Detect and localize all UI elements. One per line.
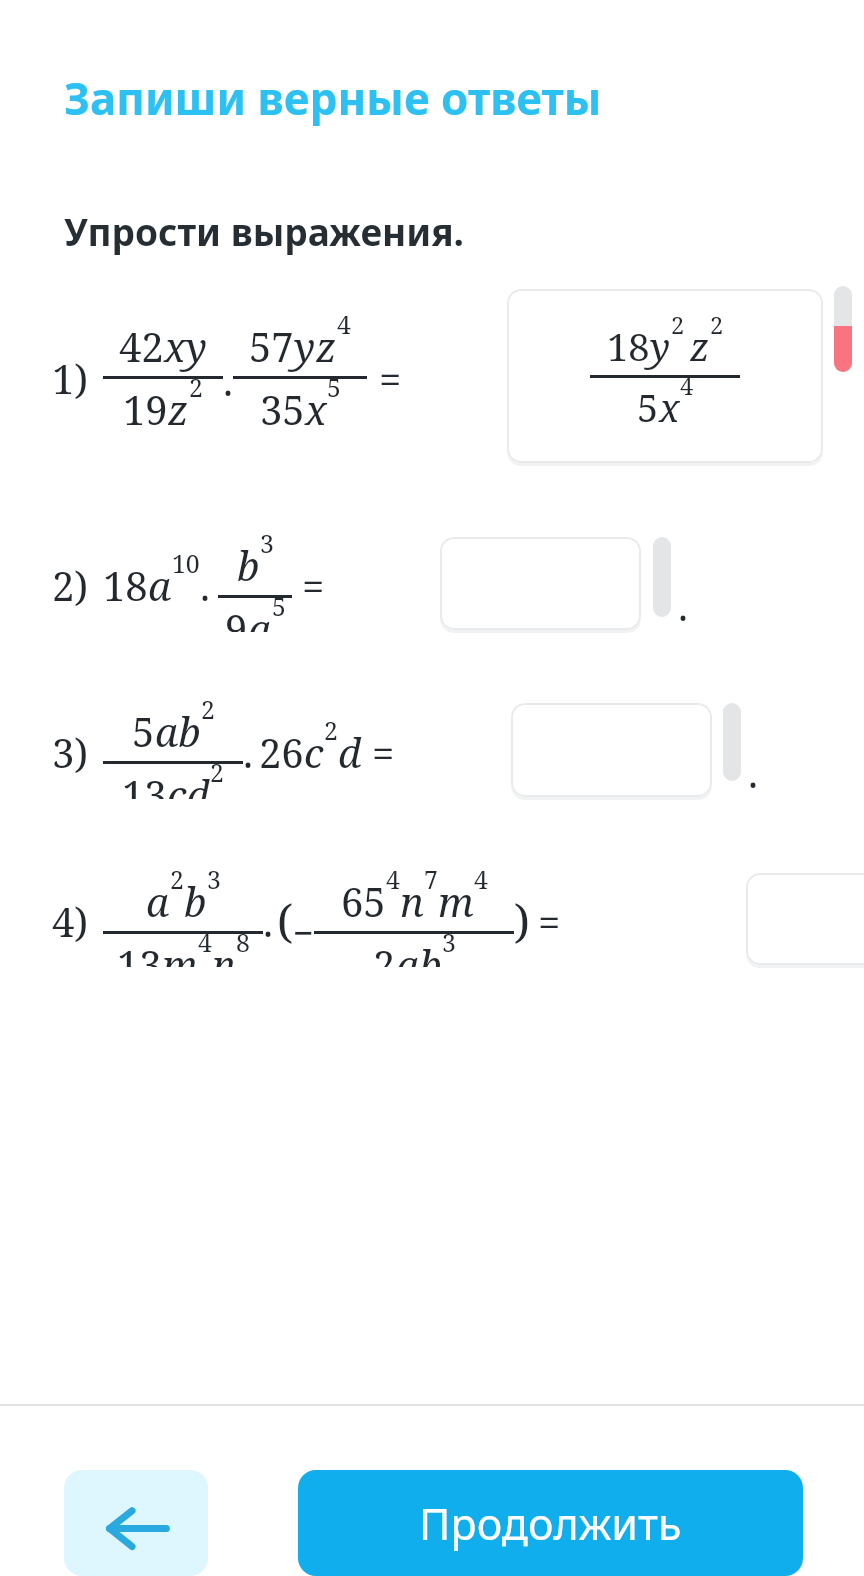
- staticText: b: [237, 538, 260, 592]
- button[interactable]: [746, 873, 864, 965]
- staticText: 8: [236, 925, 250, 955]
- staticText: x: [305, 382, 327, 436]
- staticText: 26: [259, 725, 304, 779]
- button[interactable]: [511, 703, 712, 797]
- staticText: 1): [52, 351, 89, 405]
- staticText: ): [514, 889, 530, 952]
- staticText: 42: [119, 319, 164, 373]
- staticText: 2: [710, 309, 724, 341]
- staticText: =: [372, 725, 395, 779]
- staticText: Продолжить: [419, 1494, 682, 1553]
- button[interactable]: [440, 537, 641, 630]
- staticText: 4: [680, 370, 694, 402]
- staticText: 13: [117, 937, 162, 967]
- staticText: 2): [52, 558, 89, 612]
- staticText: 2: [671, 309, 685, 341]
- staticText: a: [148, 558, 172, 612]
- staticText: 2: [170, 862, 184, 896]
- button[interactable]: 18: [507, 289, 823, 463]
- staticText: xy: [164, 319, 207, 373]
- staticText: (: [277, 889, 293, 952]
- staticText: 3: [442, 925, 456, 955]
- button[interactable]: Назад: [64, 1470, 208, 1576]
- staticText: ·: [200, 570, 210, 624]
- staticText: =: [379, 351, 402, 405]
- staticText: 3: [207, 862, 221, 896]
- staticText: 13: [122, 767, 167, 799]
- button[interactable]: Продолжить: [298, 1470, 803, 1576]
- staticText: a: [248, 601, 272, 632]
- staticText: d: [338, 725, 362, 779]
- staticText: .: [748, 745, 758, 799]
- staticText: m: [438, 874, 474, 928]
- staticText: 10: [172, 546, 200, 580]
- staticText: 5: [327, 370, 341, 404]
- staticText: 2: [189, 370, 203, 404]
- staticText: z: [168, 382, 189, 436]
- staticText: b: [184, 874, 207, 928]
- staticText: .: [678, 578, 688, 632]
- staticText: 18: [607, 320, 650, 372]
- staticText: 3: [260, 526, 274, 560]
- staticText: Упрости выражения.: [64, 206, 465, 256]
- staticText: x: [659, 381, 680, 433]
- staticText: 2: [324, 713, 338, 747]
- staticText: c: [304, 725, 324, 779]
- staticText: ab: [396, 937, 442, 967]
- staticText: ·: [263, 906, 273, 960]
- staticText: 4: [386, 862, 400, 896]
- staticText: Запиши верные ответы: [64, 68, 602, 128]
- staticText: 7: [424, 862, 438, 896]
- staticText: ·: [223, 365, 233, 419]
- staticText: n: [400, 874, 424, 928]
- staticText: 3): [52, 725, 89, 779]
- staticText: ab: [155, 704, 201, 758]
- staticText: 65: [341, 874, 386, 928]
- staticText: =: [302, 558, 325, 612]
- staticText: y: [294, 319, 316, 373]
- staticText: 4: [337, 307, 351, 341]
- staticText: 9: [225, 601, 248, 632]
- staticText: 4): [52, 894, 89, 948]
- staticText: 4: [474, 862, 488, 896]
- staticText: 35: [260, 382, 305, 436]
- staticText: 5: [132, 704, 155, 758]
- staticText: z: [690, 320, 710, 372]
- staticText: =: [538, 894, 561, 948]
- staticText: z: [316, 319, 337, 373]
- staticText: 5: [637, 381, 659, 433]
- staticText: 57: [249, 319, 294, 373]
- staticText: 4: [198, 925, 212, 955]
- staticText: ·: [243, 737, 253, 791]
- staticText: 2: [373, 937, 396, 967]
- staticText: n: [212, 937, 236, 967]
- staticText: 19: [123, 382, 168, 436]
- staticText: y: [650, 320, 671, 372]
- staticText: −: [293, 908, 314, 957]
- staticText: 2: [210, 755, 224, 787]
- staticText: a: [146, 874, 170, 928]
- staticText: 2: [201, 692, 215, 726]
- staticText: 18: [103, 558, 148, 612]
- staticText: 5: [272, 589, 286, 620]
- staticText: m: [162, 937, 198, 967]
- staticText: cd: [167, 767, 210, 799]
